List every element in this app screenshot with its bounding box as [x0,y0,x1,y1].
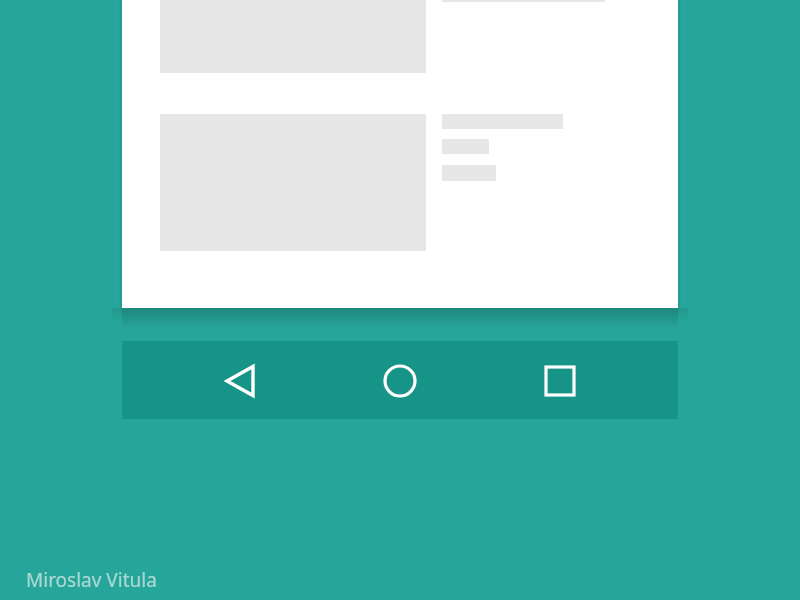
button[interactable] [538,361,582,401]
button[interactable] [222,361,266,401]
staticText: Miroslav Vitula [26,567,157,593]
button[interactable] [378,361,422,401]
